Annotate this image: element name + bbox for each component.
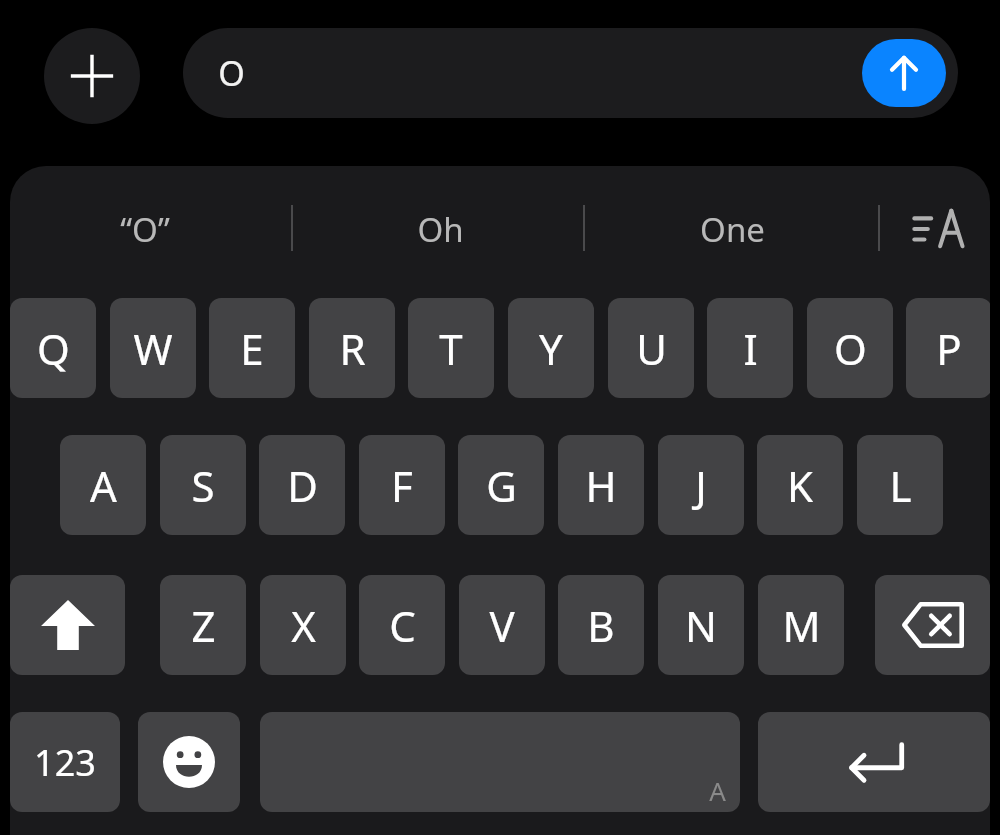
button[interactable]: Space [260,712,740,812]
staticText: E [240,320,264,377]
staticText: X [291,597,316,654]
button[interactable]: D [259,435,345,535]
button[interactable]: V [459,575,545,675]
button[interactable]: A [60,435,146,535]
button[interactable]: L [857,435,943,535]
button[interactable]: W [110,298,196,398]
staticText: V [489,597,515,654]
button[interactable]: Send [862,39,946,107]
button[interactable]: One [642,195,822,263]
staticText: S [191,457,215,514]
staticText: T [439,320,463,377]
staticText: 123 [34,738,96,787]
button[interactable]: Q [10,298,96,398]
button[interactable]: “O” [55,195,235,263]
button[interactable]: I [707,298,793,398]
staticText: N [685,597,717,654]
button[interactable]: 123 [10,712,120,812]
button[interactable]: O [183,28,958,118]
staticText: Z [191,597,216,654]
staticText: K [787,457,813,514]
button[interactable]: J [658,435,744,535]
button[interactable]: Oh [350,195,530,263]
staticText: O [218,50,245,96]
button[interactable]: X [260,575,346,675]
button[interactable]: H [558,435,644,535]
button[interactable]: N [658,575,744,675]
staticText: C [389,597,416,654]
button[interactable]: Z [160,575,246,675]
staticText: Y [539,320,563,377]
button[interactable]: B [558,575,644,675]
button[interactable]: Return [758,712,990,812]
staticText: L [889,457,912,514]
button[interactable]: C [359,575,445,675]
button[interactable]: Text formatting [908,199,970,257]
staticText: O [834,320,867,377]
button[interactable]: P [906,298,990,398]
button[interactable]: K [757,435,843,535]
staticText: F [391,457,413,514]
button[interactable]: Shift [10,575,125,675]
staticText: Q [37,320,70,377]
staticText: A [90,457,117,514]
staticText: J [695,457,707,514]
button[interactable]: U [608,298,694,398]
staticText: W [133,320,173,377]
button[interactable]: F [359,435,445,535]
button[interactable]: Emoji [138,712,240,812]
button[interactable]: S [160,435,246,535]
button[interactable]: R [309,298,395,398]
staticText: One [700,207,765,252]
button[interactable]: Add attachment [44,28,140,124]
staticText: A [709,773,726,808]
staticText: I [743,320,758,377]
staticText: P [936,320,962,377]
staticText: D [287,457,318,514]
button[interactable]: Y [508,298,594,398]
button[interactable]: M [758,575,844,675]
staticText: G [486,457,517,514]
button[interactable]: T [408,298,494,398]
button[interactable]: O [807,298,893,398]
staticText: B [587,597,615,654]
button[interactable]: Backspace [875,575,990,675]
staticText: M [782,597,821,654]
staticText: R [339,320,366,377]
staticText: U [636,320,667,377]
staticText: Oh [417,207,464,252]
button[interactable]: G [458,435,544,535]
staticText: “O” [120,207,170,252]
staticText: H [585,457,617,514]
button[interactable]: E [209,298,295,398]
